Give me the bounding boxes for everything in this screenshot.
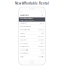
staticText: Lottery closes Jun 30 xyxy=(20,20,34,21)
button[interactable]: Accessibility xyxy=(19,48,45,51)
staticText: Preference xyxy=(20,46,29,47)
staticText: Move-in xyxy=(20,36,25,37)
button[interactable]: Preference xyxy=(19,45,45,48)
staticText: Jun 2025 xyxy=(38,36,44,37)
button[interactable]: Voucher xyxy=(19,38,45,41)
button[interactable]: Documents xyxy=(19,42,45,45)
staticText: Status xyxy=(20,56,24,58)
button[interactable]: Co-applicant xyxy=(19,52,45,55)
button[interactable]: Household size xyxy=(19,25,45,28)
staticText: Applicant xyxy=(20,22,26,24)
staticText: Resident xyxy=(38,46,44,47)
staticText: Accessibility xyxy=(20,49,28,51)
button[interactable]: Move-in xyxy=(19,35,45,38)
staticText: Add xyxy=(41,52,44,54)
staticText: 2 BR xyxy=(41,32,44,34)
button[interactable]: Applicant xyxy=(19,22,45,25)
button[interactable]: Status xyxy=(19,55,45,58)
staticText: Documents xyxy=(20,42,28,44)
staticText: Unit type xyxy=(20,32,25,34)
button[interactable]: Unit type xyxy=(19,32,45,35)
button[interactable]: Annual income xyxy=(19,28,45,31)
staticText: Co-applicant xyxy=(20,52,28,54)
staticText: $42,500 xyxy=(38,29,44,31)
staticText: Submitted xyxy=(38,56,44,58)
staticText: Annual income xyxy=(20,29,30,31)
staticText: Jane A. xyxy=(40,22,44,24)
staticText: Section 8 xyxy=(38,39,44,41)
staticText: Filter xyxy=(41,14,44,16)
staticText: Applications xyxy=(20,14,29,16)
staticText: 4 files xyxy=(40,42,44,44)
staticText: Voucher xyxy=(20,39,27,41)
staticText: New Affordable Rental xyxy=(15,2,49,5)
staticText: Household size xyxy=(20,26,31,27)
staticText: Oakview Commons xyxy=(20,18,33,19)
